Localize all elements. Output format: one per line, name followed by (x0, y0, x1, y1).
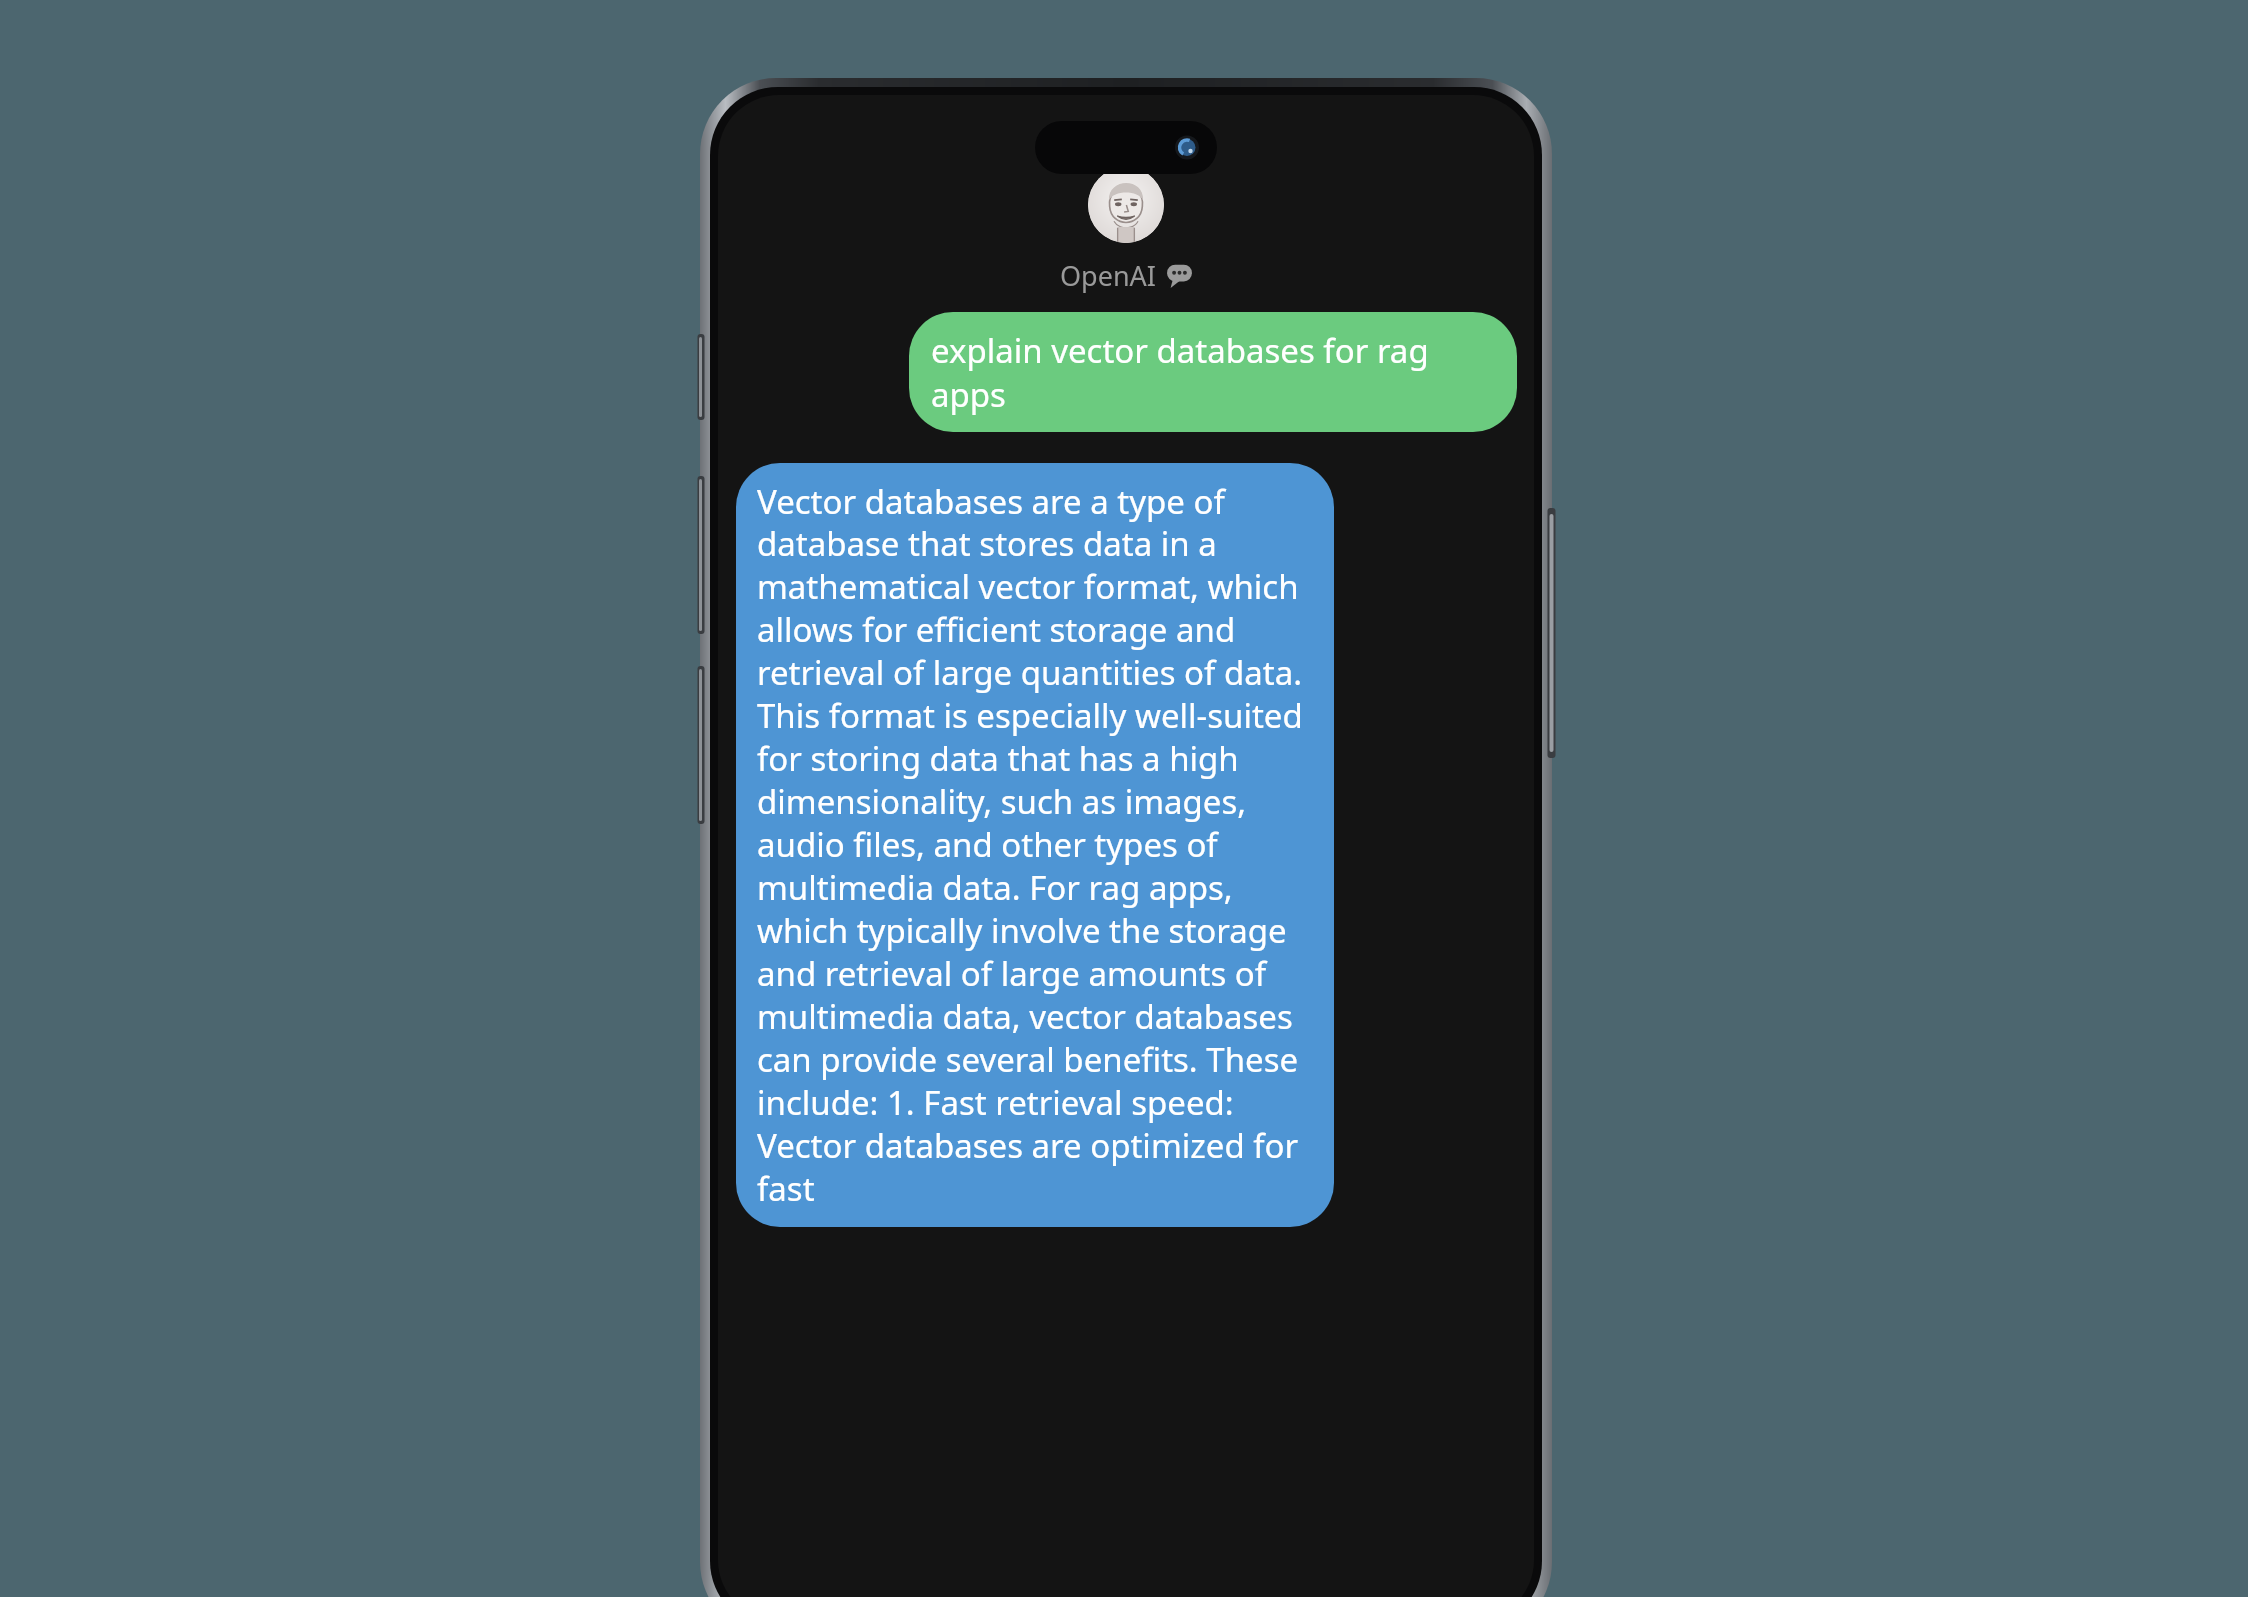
button[interactable]: explain vector databases for rag apps (909, 312, 1517, 432)
other: Dynamic Island (1035, 121, 1217, 174)
staticText: Vector databases are a type of database … (757, 479, 1313, 1211)
button[interactable]: OpenAI (1054, 255, 1199, 296)
staticText: explain vector databases for rag apps (931, 328, 1495, 416)
staticText: OpenAI (1060, 257, 1157, 294)
button[interactable]: Vector databases are a type of database … (736, 463, 1334, 1227)
button[interactable]: OpenAI contact avatar (1088, 167, 1164, 243)
